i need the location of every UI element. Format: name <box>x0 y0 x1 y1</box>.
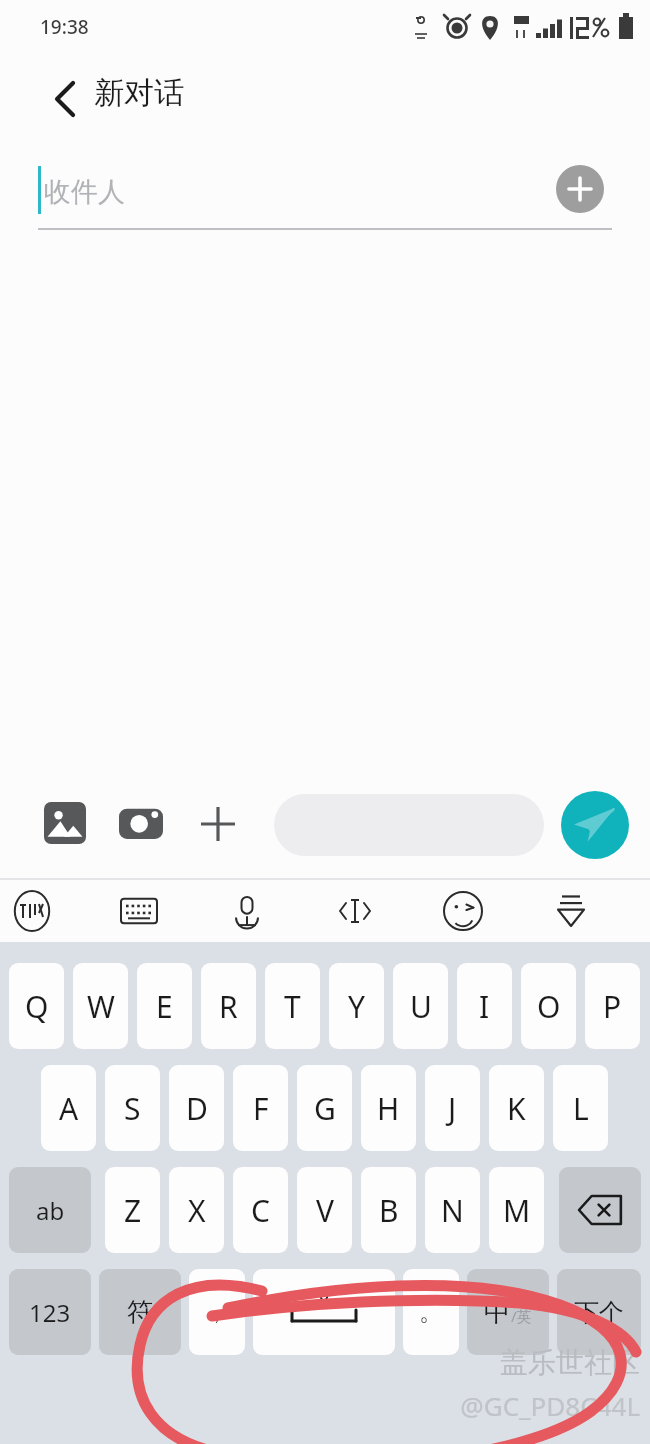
button[interactable]: Space <box>253 1269 395 1355</box>
staticText: B <box>379 1190 399 1231</box>
button[interactable]: I <box>457 963 512 1049</box>
staticText: 收件人 <box>44 175 125 209</box>
staticText: T <box>284 986 301 1027</box>
button[interactable]: 符 <box>99 1269 181 1355</box>
staticText: /英 <box>511 1306 532 1326</box>
staticText: L <box>573 1088 589 1129</box>
button[interactable] <box>274 794 544 856</box>
button[interactable]: More options <box>196 802 240 846</box>
staticText: A <box>59 1088 79 1129</box>
button[interactable]: 收件人 <box>44 170 344 214</box>
staticText: 19:38 <box>40 14 89 40</box>
button[interactable]: G <box>297 1065 352 1151</box>
staticText: W <box>87 986 115 1027</box>
staticText: G <box>314 1088 336 1129</box>
button[interactable]: V <box>297 1167 352 1253</box>
button[interactable]: Text selection <box>333 889 377 933</box>
button[interactable]: Z <box>105 1167 160 1253</box>
staticText: 下个 <box>574 1297 624 1328</box>
button[interactable]: 。 <box>403 1269 459 1355</box>
button[interactable]: S <box>105 1065 160 1151</box>
staticText: 。 <box>419 1297 443 1327</box>
staticText: 符 <box>127 1296 153 1329</box>
button[interactable]: Input method <box>10 889 54 933</box>
button[interactable]: 下个 <box>557 1269 641 1355</box>
staticText: S <box>124 1088 141 1129</box>
staticText: U <box>410 986 432 1027</box>
button[interactable]: B <box>361 1167 416 1253</box>
button[interactable]: M <box>489 1167 544 1253</box>
staticText: F <box>253 1088 269 1129</box>
button[interactable]: Attach image <box>42 800 88 846</box>
staticText: 盖乐世社区 <box>440 1345 640 1380</box>
button[interactable]: J <box>425 1065 480 1151</box>
staticText: Z <box>124 1190 142 1231</box>
button[interactable]: L <box>553 1065 608 1151</box>
button[interactable]: T <box>265 963 320 1049</box>
staticText: M <box>503 1190 531 1231</box>
button[interactable]: Add recipient <box>556 165 604 213</box>
button[interactable]: U <box>393 963 448 1049</box>
button[interactable]: ， <box>189 1269 245 1355</box>
staticText: O <box>537 986 561 1027</box>
staticText: Y <box>348 986 365 1027</box>
staticText: 中 <box>484 1295 511 1329</box>
button[interactable]: E <box>137 963 192 1049</box>
button[interactable]: K <box>489 1065 544 1151</box>
button[interactable]: P <box>585 963 640 1049</box>
button[interactable]: X <box>169 1167 224 1253</box>
button[interactable]: Y <box>329 963 384 1049</box>
button[interactable]: H <box>361 1065 416 1151</box>
staticText: R <box>219 986 238 1027</box>
staticText: N <box>441 1190 464 1231</box>
button[interactable]: 123 <box>9 1269 91 1355</box>
button[interactable]: Voice input <box>225 889 269 933</box>
button[interactable]: Camera <box>118 802 164 844</box>
button[interactable]: F <box>233 1065 288 1151</box>
staticText: ab <box>36 1194 65 1227</box>
button[interactable]: N <box>425 1167 480 1253</box>
staticText: H <box>377 1088 400 1129</box>
staticText: I <box>479 986 490 1027</box>
button[interactable]: Emoji <box>441 889 485 933</box>
staticText: @GC_PD8C44L <box>420 1388 640 1423</box>
button[interactable]: Q <box>9 963 64 1049</box>
button[interactable]: Send <box>561 791 629 859</box>
staticText: ， <box>205 1297 229 1327</box>
button[interactable]: Hide keyboard <box>549 889 593 933</box>
button[interactable]: R <box>201 963 256 1049</box>
staticText: C <box>251 1190 270 1231</box>
staticText: D <box>186 1088 208 1129</box>
button[interactable]: C <box>233 1167 288 1253</box>
button[interactable]: ab <box>9 1167 91 1253</box>
staticText: X <box>188 1190 206 1231</box>
staticText: P <box>603 986 622 1027</box>
button[interactable]: D <box>169 1065 224 1151</box>
button[interactable]: Switch language <box>467 1269 549 1355</box>
button[interactable]: A <box>41 1065 96 1151</box>
staticText: Q <box>25 986 49 1027</box>
button[interactable]: O <box>521 963 576 1049</box>
staticText: E <box>156 986 173 1027</box>
button[interactable]: Keyboard layout <box>117 889 161 933</box>
staticText: V <box>316 1190 334 1231</box>
staticText: 123 <box>29 1296 71 1329</box>
staticText: J <box>448 1088 457 1129</box>
button[interactable]: W <box>73 963 128 1049</box>
button[interactable]: Backspace <box>559 1167 641 1253</box>
staticText: K <box>507 1088 526 1129</box>
button[interactable]: Back <box>38 72 90 126</box>
staticText: 新对话 <box>94 74 184 112</box>
